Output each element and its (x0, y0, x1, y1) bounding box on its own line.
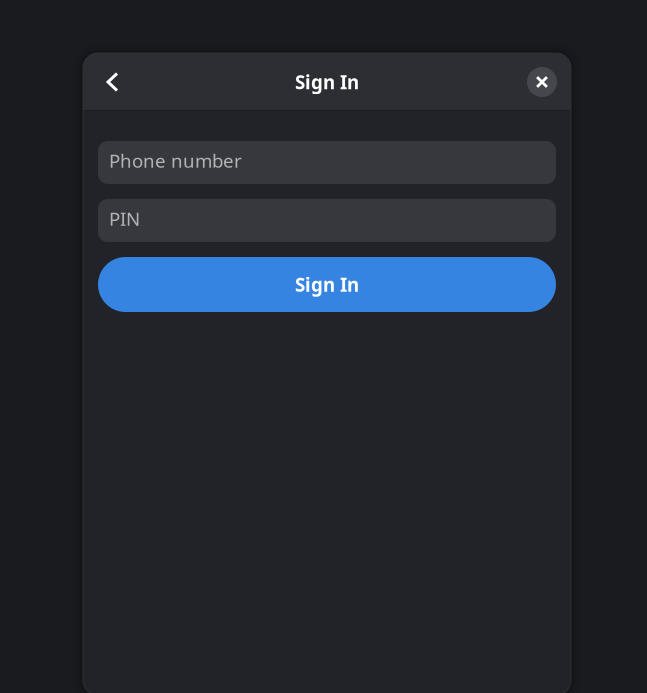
button[interactable]: Sign In (98, 257, 556, 312)
staticText: Sign In (295, 70, 359, 94)
button[interactable]: Close (513, 53, 571, 111)
button[interactable]: Phone number (98, 141, 556, 184)
staticText: Phone number (109, 148, 242, 173)
staticText: PIN (109, 206, 140, 231)
button[interactable]: PIN (98, 199, 556, 242)
staticText: Sign In (295, 272, 359, 297)
button[interactable]: Back (83, 53, 142, 111)
